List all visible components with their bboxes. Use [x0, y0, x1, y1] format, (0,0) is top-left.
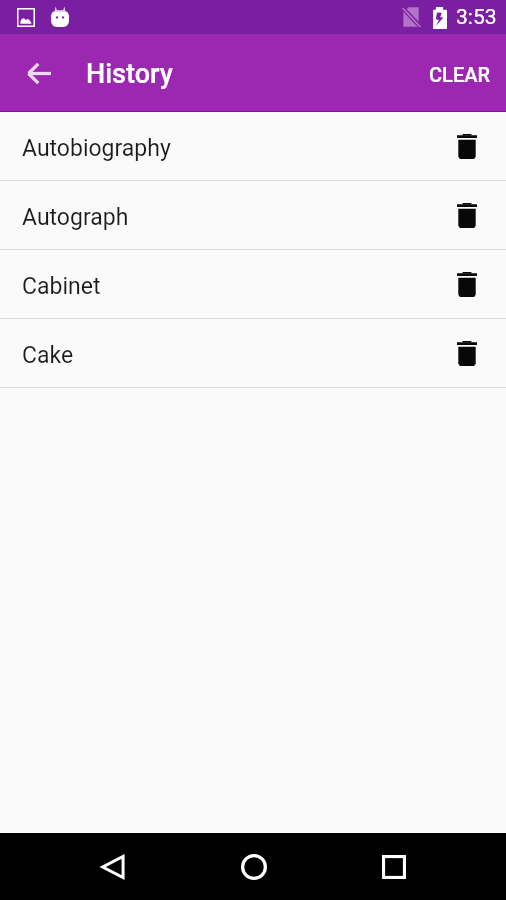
button[interactable]: Delete — [440, 326, 494, 380]
button[interactable]: Recent apps — [360, 833, 427, 900]
button[interactable]: Delete — [440, 257, 494, 311]
button[interactable]: Back — [79, 833, 146, 900]
staticText: 3:53 — [456, 5, 497, 30]
staticText: Autograph — [22, 204, 452, 231]
staticText: History — [86, 58, 173, 90]
button[interactable]: Cake — [0, 319, 506, 387]
staticText: Cabinet — [22, 273, 452, 300]
staticText: CLEAR — [429, 63, 490, 86]
button[interactable]: Autobiography — [0, 112, 506, 180]
button[interactable]: Cabinet — [0, 250, 506, 318]
staticText: Cake — [22, 342, 452, 369]
button[interactable]: CLEAR — [413, 46, 506, 102]
button[interactable]: Navigate up — [15, 49, 63, 97]
staticText: Autobiography — [22, 135, 452, 162]
button[interactable]: Delete — [440, 119, 494, 173]
button[interactable]: Delete — [440, 188, 494, 242]
button[interactable]: Home — [220, 833, 287, 900]
button[interactable]: Autograph — [0, 181, 506, 249]
